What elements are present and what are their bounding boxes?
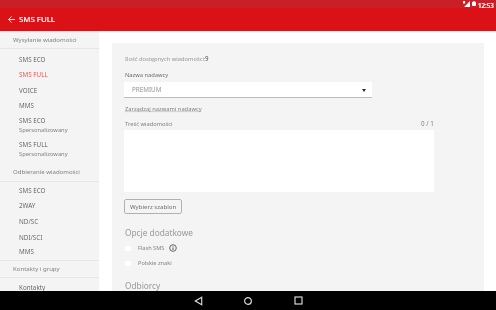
staticText: MMS — [19, 247, 34, 256]
staticText: SMS FULL — [19, 140, 48, 149]
button[interactable] — [0, 95, 99, 111]
staticText: Ilość dostępnych wiadomości: — [125, 55, 207, 63]
staticText: Kontakty i grupy — [13, 265, 60, 273]
button[interactable]: Home — [239, 292, 257, 310]
staticText: Treść wiadomości — [125, 120, 173, 128]
button[interactable]: Polskie znaki — [124, 257, 274, 269]
button[interactable] — [0, 244, 99, 258]
staticText: Flash SMS — [138, 244, 165, 252]
staticText: MMS — [19, 101, 34, 110]
button[interactable]: Navigate up — [3, 8, 19, 31]
button[interactable] — [0, 80, 99, 96]
staticText: Odbiorcy — [125, 280, 161, 291]
button[interactable] — [0, 213, 99, 229]
button[interactable] — [0, 182, 99, 198]
staticText: Spersonalizowany — [19, 126, 68, 134]
staticText: 9 — [205, 54, 209, 62]
staticText: NDI/SCI — [19, 233, 43, 242]
staticText: Wysyłanie wiadomości — [13, 36, 77, 44]
button[interactable]: Flash SMS — [124, 242, 294, 254]
staticText: 2WAY — [19, 201, 36, 210]
staticText: SMS ECO — [19, 55, 46, 64]
staticText: 0 / 1 — [421, 119, 434, 128]
staticText: SMS FULL — [19, 70, 48, 79]
button[interactable] — [0, 64, 99, 80]
staticText: SMS FULL — [19, 14, 56, 25]
staticText: 12:53 — [478, 1, 494, 9]
button[interactable]: Zarządzaj nazwami nadawcy — [125, 105, 202, 113]
staticText: Spersonalizowany — [19, 150, 68, 158]
staticText: Polskie znaki — [138, 259, 172, 267]
button[interactable] — [0, 278, 99, 291]
button[interactable] — [0, 198, 99, 214]
button[interactable] — [0, 49, 99, 65]
button[interactable]: Back — [189, 292, 207, 310]
button[interactable]: PREMIUM — [124, 82, 372, 97]
button[interactable]: Wybierz szablon — [124, 199, 182, 214]
button[interactable] — [0, 229, 99, 245]
staticText: SMS ECO — [19, 116, 46, 125]
staticText: Odbieranie wiadomości — [13, 168, 80, 176]
button[interactable]: Recent apps — [289, 291, 307, 309]
staticText: Wybierz szablon — [130, 203, 177, 211]
staticText: VOICE — [19, 86, 38, 95]
staticText: PREMIUM — [132, 85, 162, 94]
button[interactable] — [0, 134, 99, 157]
button[interactable] — [0, 111, 99, 134]
staticText: Opcje dodatkowe — [125, 227, 193, 238]
staticText: ND/SC — [19, 217, 39, 226]
staticText: Nazwa nadawcy — [125, 71, 169, 79]
staticText: SMS ECO — [19, 186, 46, 195]
staticText: Kontakty — [19, 283, 46, 292]
